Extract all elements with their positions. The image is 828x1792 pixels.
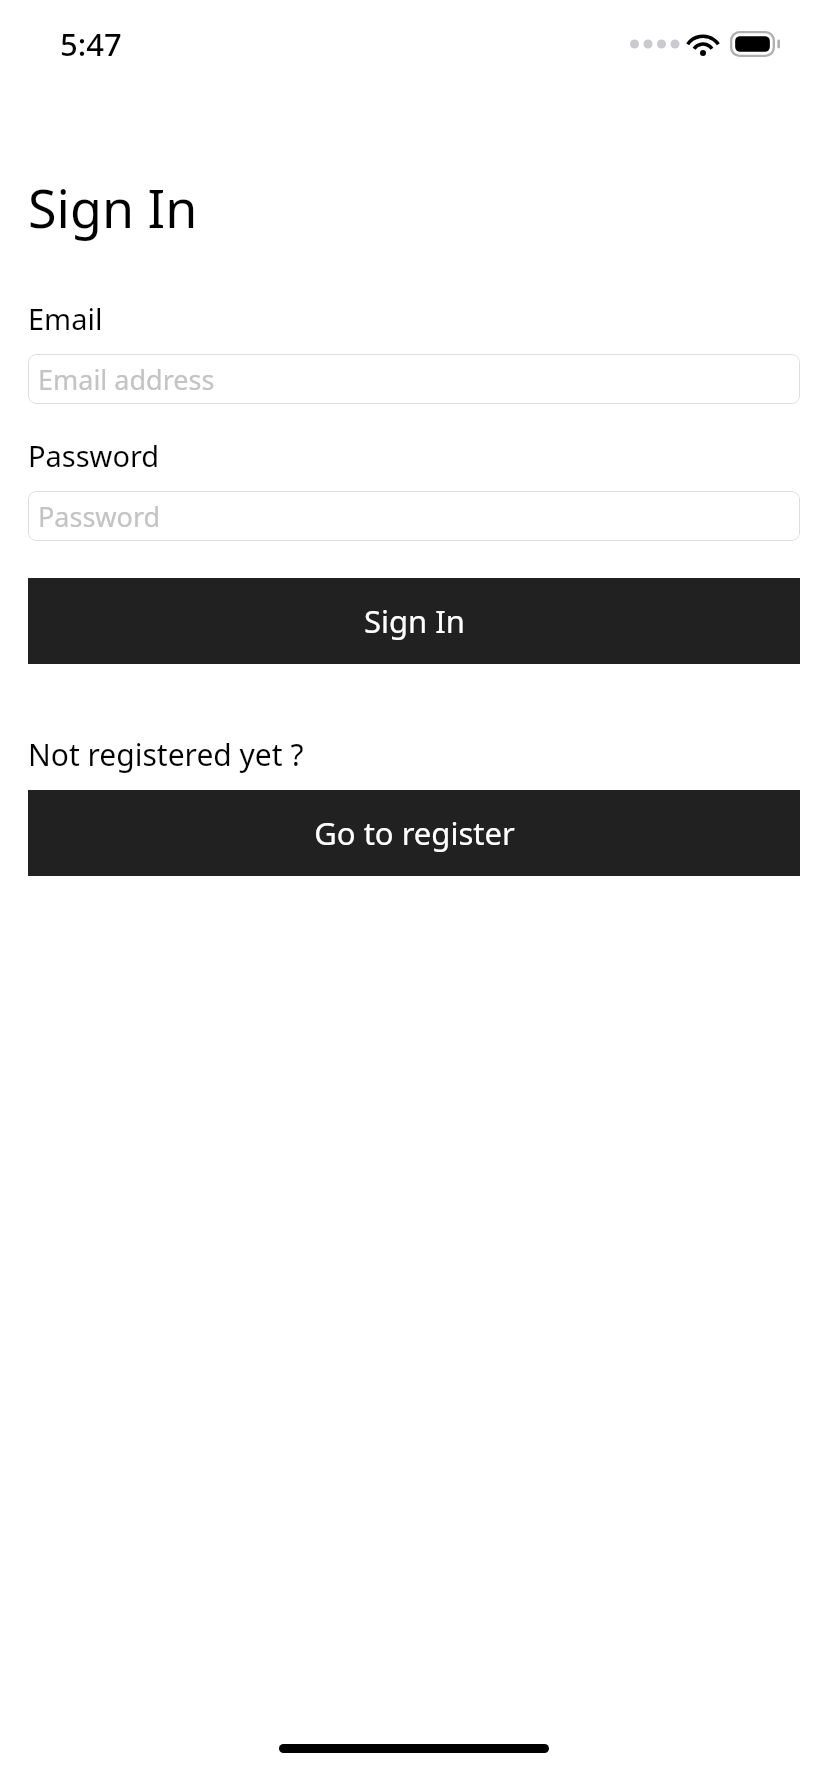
button[interactable]: Sign In [28,578,800,664]
staticText: Email address [38,361,215,398]
staticText: Sign In [364,600,465,642]
staticText: Password [38,498,161,535]
staticText: Email [28,299,103,338]
button[interactable]: Go to register [28,790,800,876]
button[interactable]: Password [28,491,800,541]
staticText: 5:47 [60,23,122,65]
staticText: Sign In [28,172,198,243]
staticText: Go to register [314,812,515,854]
button[interactable]: Email address [28,354,800,404]
staticText: Password [28,436,160,475]
staticText: Not registered yet ? [28,734,304,775]
